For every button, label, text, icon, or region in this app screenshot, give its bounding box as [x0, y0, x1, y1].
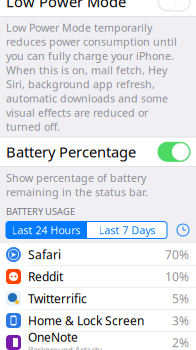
staticText: 2% — [172, 335, 189, 350]
staticText: Safari — [28, 247, 61, 262]
button[interactable]: Battery Percentage — [0, 137, 196, 167]
staticText: OneNote — [28, 329, 78, 345]
staticText: ➤ — [10, 250, 17, 259]
staticText: Low Power Mode temporarily reduces power… — [6, 20, 177, 134]
staticText: 3% — [172, 313, 189, 328]
staticText: 10% — [165, 269, 189, 284]
staticText: Battery Percentage — [6, 142, 136, 162]
staticText: Background Activity — [28, 345, 102, 350]
staticText: Low Power Mode — [6, 0, 126, 11]
staticText: Last 7 Days — [98, 223, 155, 237]
staticText: 70% — [165, 247, 189, 262]
staticText: Home & Lock Screen — [28, 313, 144, 328]
button[interactable]: Low Power Mode — [0, 0, 196, 16]
button[interactable]: Last 24 Hours — [6, 221, 86, 238]
staticText: Twitterrific — [28, 291, 87, 306]
button[interactable]: ➤ — [0, 243, 196, 265]
staticText: Reddit — [28, 269, 63, 284]
button[interactable]: Reddit — [0, 265, 196, 287]
button[interactable]: Last 7 Days — [87, 221, 167, 238]
button[interactable]: OneNote — [0, 331, 196, 350]
button[interactable]: Show battery usage time — [175, 222, 191, 238]
staticText: Last 24 Hours — [11, 223, 80, 237]
button[interactable]: Twitterrific — [0, 287, 196, 309]
staticText: BATTERY USAGE — [6, 205, 75, 217]
staticText: 5% — [172, 291, 189, 306]
staticText: Show percentage of battery remaining in … — [6, 171, 148, 199]
button[interactable]: Home & Lock Screen — [0, 309, 196, 331]
